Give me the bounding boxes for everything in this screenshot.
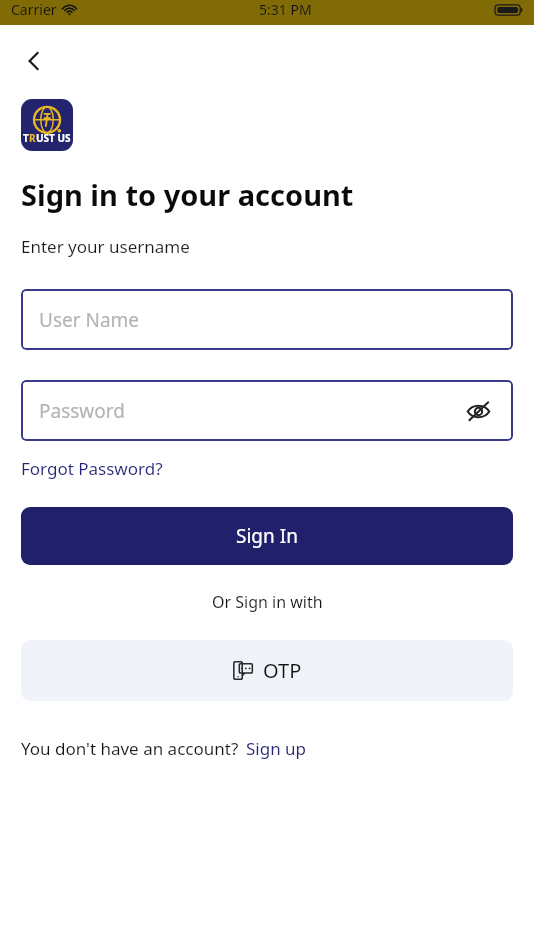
staticText: Sign in to your account <box>21 175 354 214</box>
button[interactable]: User Name <box>21 289 513 350</box>
staticText: 5:31 PM <box>259 0 312 19</box>
staticText: You don't have an account? <box>21 737 239 760</box>
staticText: UST US <box>36 131 71 145</box>
button[interactable]: Back <box>10 37 58 85</box>
staticText: Enter your username <box>21 235 190 258</box>
staticText: R <box>29 131 36 145</box>
staticText: OTP <box>263 657 302 684</box>
staticText: Sign up <box>246 737 307 760</box>
button[interactable]: Sign In <box>21 507 513 565</box>
staticText: Forgot Password? <box>21 457 163 480</box>
button[interactable]: Show password <box>463 396 493 426</box>
button[interactable]: OTP <box>21 640 513 701</box>
button[interactable]: Sign up <box>246 737 307 760</box>
staticText: T <box>23 131 29 145</box>
button[interactable]: Password <box>21 380 513 441</box>
staticText: Or Sign in with <box>212 591 323 613</box>
staticText: Sign In <box>236 523 298 549</box>
staticText: Carrier <box>11 0 57 19</box>
staticText: Password <box>39 398 125 424</box>
staticText: User Name <box>39 307 140 333</box>
button[interactable]: Forgot Password? <box>21 457 163 480</box>
